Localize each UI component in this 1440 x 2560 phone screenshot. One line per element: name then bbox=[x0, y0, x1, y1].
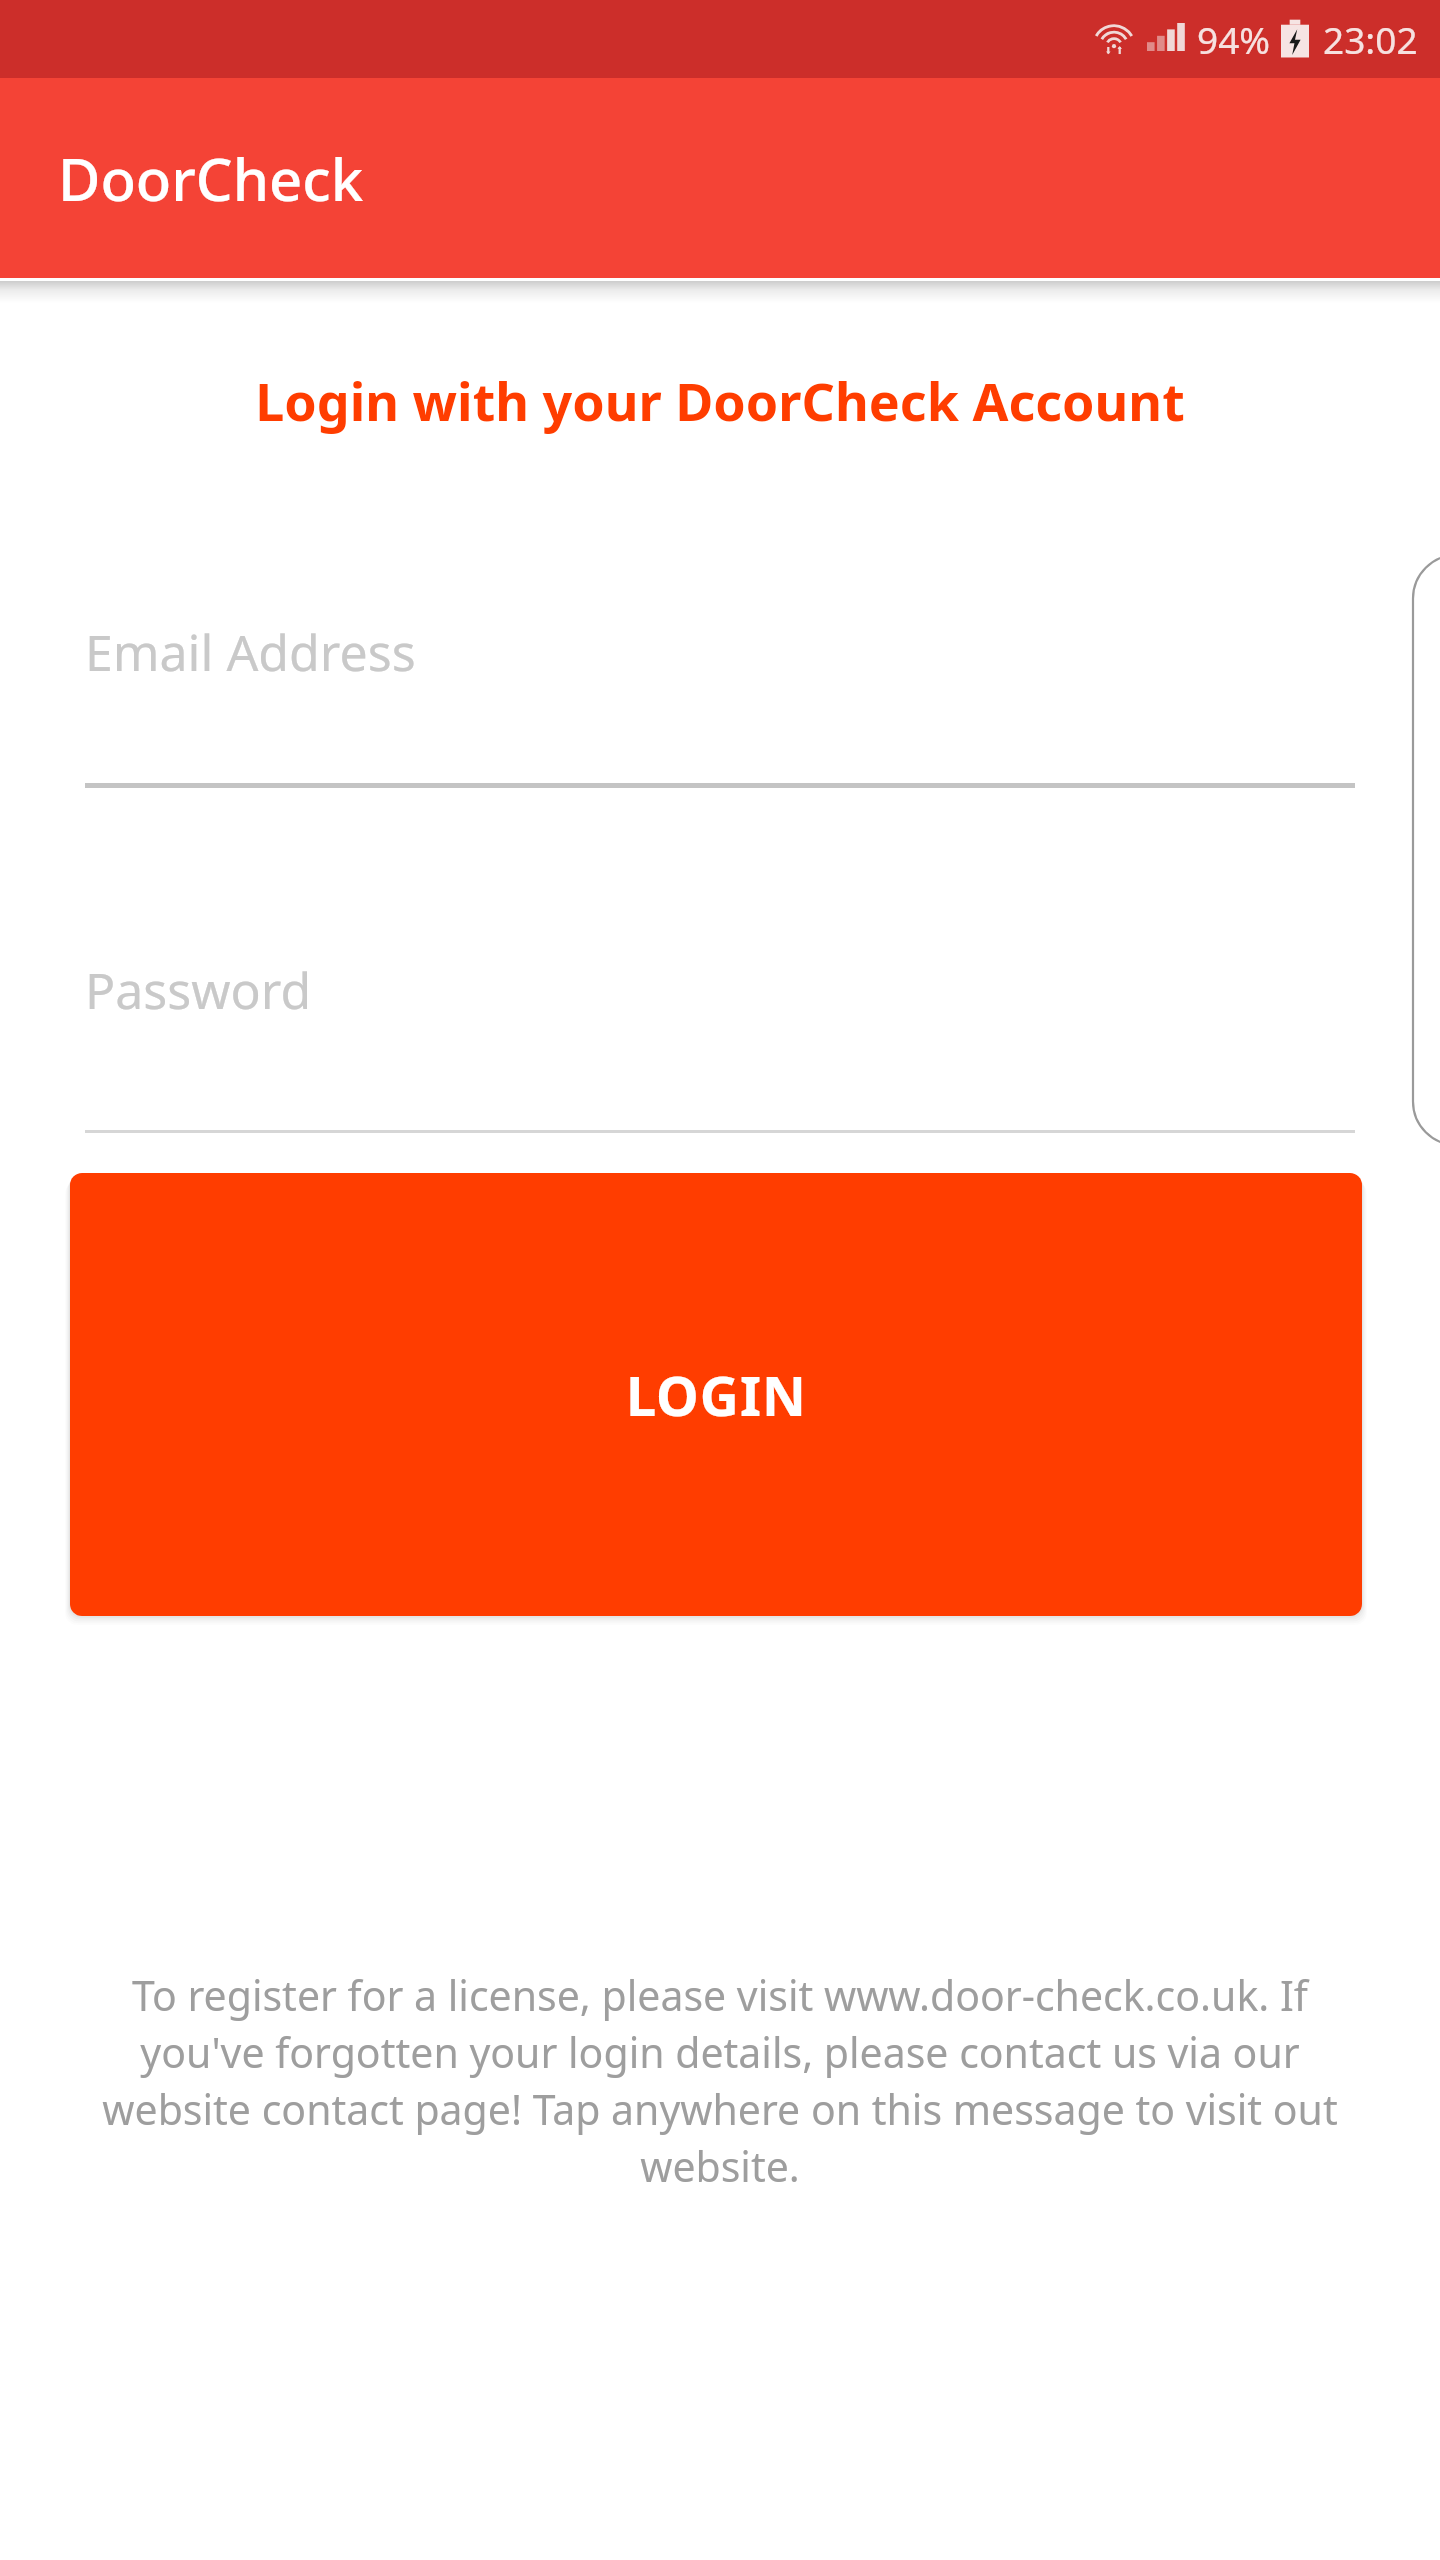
button[interactable]: Email Address bbox=[85, 618, 1355, 788]
staticText: Password bbox=[85, 956, 312, 1024]
staticText: DoorCheck bbox=[58, 139, 364, 218]
staticText: To register for a license, please visit … bbox=[78, 1967, 1362, 2194]
button[interactable]: To register for a license, please visit … bbox=[0, 1967, 1440, 2194]
staticText: Email Address bbox=[85, 618, 416, 686]
staticText: 94% bbox=[1197, 14, 1271, 64]
staticText: LOGIN bbox=[626, 1358, 807, 1432]
button[interactable]: LOGIN bbox=[70, 1173, 1362, 1616]
button[interactable]: Password bbox=[85, 956, 1355, 1133]
staticText: Login with your DoorCheck Account bbox=[0, 365, 1440, 436]
staticText: 23:02 bbox=[1323, 14, 1418, 64]
